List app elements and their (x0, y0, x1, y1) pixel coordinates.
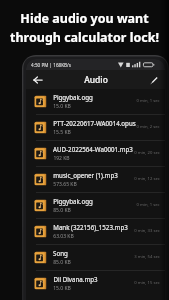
staticText: Mank (322156)_1523.mp3 (53, 223, 128, 231)
staticText: Audio (84, 74, 108, 86)
staticText: Song (53, 249, 68, 257)
button[interactable]: PTT-20220617-WA0014.opus (26, 115, 165, 140)
staticText: 0 min, 20 sec (134, 150, 160, 156)
staticText: 0 min, 12 sec (134, 176, 160, 182)
staticText: 15.0 KB (53, 285, 71, 292)
staticText: PTT-20220617-WA0014.opus (53, 119, 136, 127)
staticText: 3 min, 54 sec (134, 254, 160, 260)
button[interactable]: Song (26, 245, 165, 270)
staticText: Piggybak.ogg (53, 93, 93, 101)
staticText: 15.5 KB (53, 129, 71, 136)
staticText: AUD-2022564-Wa0001.mp3 (53, 145, 133, 153)
staticText: Piggybak.ogg (53, 197, 93, 205)
staticText: through calculator lock! (10, 29, 159, 46)
button[interactable]: Piggybak.ogg (26, 193, 165, 218)
staticText: 85.0 KB (53, 259, 71, 266)
staticText: 85.0 KB (53, 207, 71, 214)
button[interactable]: Edit (145, 72, 161, 88)
staticText: 573.65 KB (53, 181, 77, 188)
staticText: 0 min, 1 sec (136, 98, 160, 104)
button[interactable]: Dil Divana.mp3 (26, 271, 165, 296)
staticText: 4:50 PM | 168KB/s (31, 62, 71, 68)
staticText: 0 min, 1 sec (136, 202, 160, 208)
staticText: 0 min, 33 sec (134, 228, 160, 234)
button[interactable]: music_opener (1).mp3 (26, 167, 165, 192)
button[interactable]: Piggybak.ogg (26, 89, 165, 114)
staticText: 0 min, 15 sec (134, 280, 160, 286)
button[interactable]: Back (30, 72, 46, 88)
staticText: 63.03 KB (53, 233, 74, 240)
staticText: Dil Divana.mp3 (53, 275, 98, 283)
button[interactable]: AUD-2022564-Wa0001.mp3 (26, 141, 165, 166)
staticText: 0 min, 2 sec (136, 124, 160, 130)
staticText: music_opener (1).mp3 (53, 171, 118, 179)
button[interactable]: Mank (322156)_1523.mp3 (26, 219, 165, 244)
staticText: 15.0 KB (53, 103, 71, 110)
staticText: 192 KB (53, 155, 70, 162)
staticText: Hide audio you want (20, 10, 149, 27)
